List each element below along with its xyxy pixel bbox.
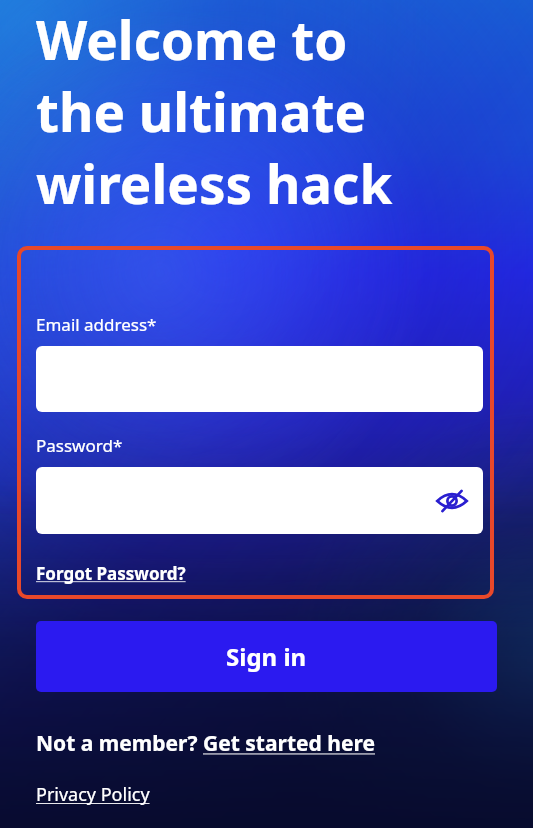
button[interactable]: Get started here	[203, 729, 376, 758]
button[interactable]: Forgot Password?	[36, 562, 186, 585]
staticText: Email address*	[36, 313, 157, 336]
button[interactable]: Sign in	[36, 621, 497, 692]
staticText: Password*	[36, 434, 123, 457]
staticText: Sign in	[226, 640, 307, 673]
staticText: wireless hack	[36, 147, 393, 219]
staticText: Privacy Policy	[36, 782, 150, 807]
staticText: the ultimate	[36, 75, 367, 147]
staticText: Forgot Password?	[36, 562, 186, 585]
staticText: Get started here	[203, 729, 376, 758]
button[interactable]: Show password	[36, 467, 483, 534]
button[interactable]	[36, 346, 483, 412]
staticText: Welcome to	[36, 3, 348, 75]
button[interactable]: Privacy Policy	[36, 782, 150, 807]
staticText: Not a member?	[36, 729, 203, 758]
button[interactable]: Show password	[432, 481, 472, 521]
